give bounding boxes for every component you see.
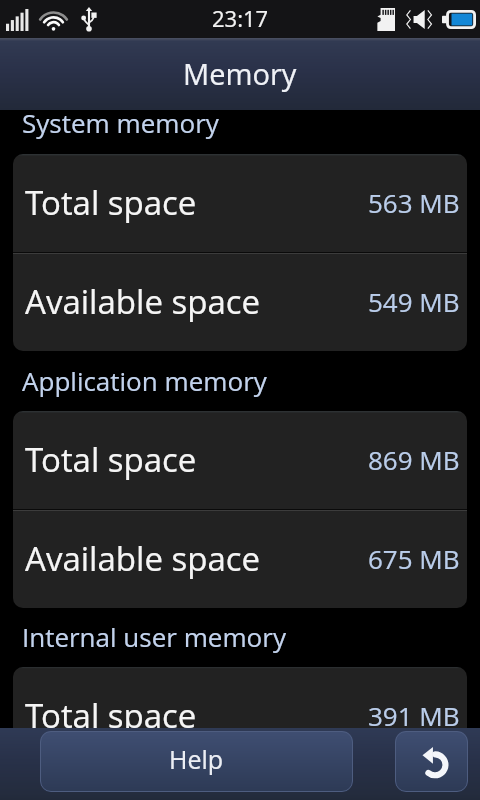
staticText: Total space [25,180,197,225]
staticText: 391 MB [368,698,460,733]
staticText: Available space [25,766,261,799]
staticText: Help [169,742,224,776]
staticText: Total space [25,693,197,738]
staticText: 23:17 [212,3,269,33]
button[interactable]: Total space [13,667,467,765]
button[interactable]: Available space [13,767,467,800]
staticText: Memory [183,54,297,93]
button[interactable]: Available space [13,511,467,608]
button[interactable]: Available space [13,254,467,351]
staticText: 675 MB [368,541,460,576]
staticText: Internal user memory [22,619,287,654]
button[interactable]: Back [395,731,468,792]
staticText: Available space [25,536,261,581]
staticText: 549 MB [368,284,460,319]
staticText: System memory [22,105,219,140]
staticText: Application memory [22,363,267,398]
button[interactable]: Help [40,731,353,792]
staticText: 563 MB [368,185,460,220]
staticText: 188 MB [368,766,460,799]
staticText: Total space [25,437,197,482]
staticText: 869 MB [368,442,460,477]
button[interactable]: Total space [13,154,467,252]
staticText: Available space [25,279,261,324]
button[interactable]: Total space [13,411,467,509]
